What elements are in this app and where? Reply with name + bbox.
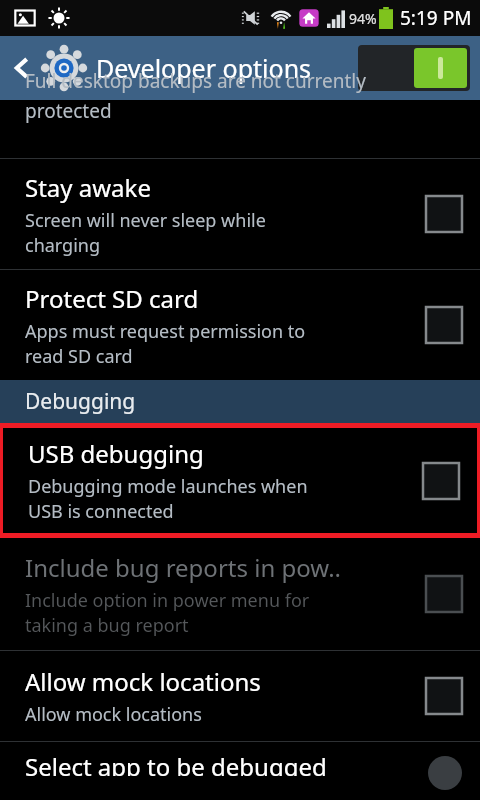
button[interactable]: Developer options on/off [358,45,470,91]
staticText: 94% [349,9,377,28]
button[interactable]: Back [0,36,44,100]
staticText: 5:19 PM [400,5,472,31]
staticText: USB debugging [28,437,204,470]
staticText: Screen will never sleep while charging [25,208,266,258]
button[interactable]: USB debugging checkbox [423,463,459,499]
button[interactable]: Stay awake [0,159,480,269]
staticText: Debugging mode launches when USB is conn… [28,474,308,524]
staticText: Include bug reports in pow.. [25,551,342,584]
staticText: Select app to be debugged [25,750,327,776]
button[interactable]: Include bug reports in pow.. checkbox [426,576,462,612]
button[interactable]: Include bug reports in pow.. [0,538,480,650]
staticText: Protect SD card [25,282,199,315]
staticText: Full desktop backups are not currently [25,68,366,94]
button[interactable]: Allow mock locations [0,651,480,741]
button[interactable]: Select app to be debugged [0,742,480,776]
staticText: Developer options [96,51,312,85]
staticText: protected [25,98,112,124]
button[interactable]: Allow mock locations checkbox [426,678,462,714]
staticText: Allow mock locations [25,702,202,727]
button[interactable]: Stay awake checkbox [426,196,462,232]
button[interactable]: Protect SD card [0,270,480,380]
staticText: Stay awake [25,171,151,204]
staticText: Apps must request permission to read SD … [25,319,306,369]
staticText: Allow mock locations [25,665,261,698]
button[interactable]: Full desktop backups are not currently [0,100,480,158]
button[interactable]: Protect SD card checkbox [426,307,462,343]
staticText: Include option in power menu for taking … [25,588,310,638]
staticText: Debugging [25,387,136,416]
